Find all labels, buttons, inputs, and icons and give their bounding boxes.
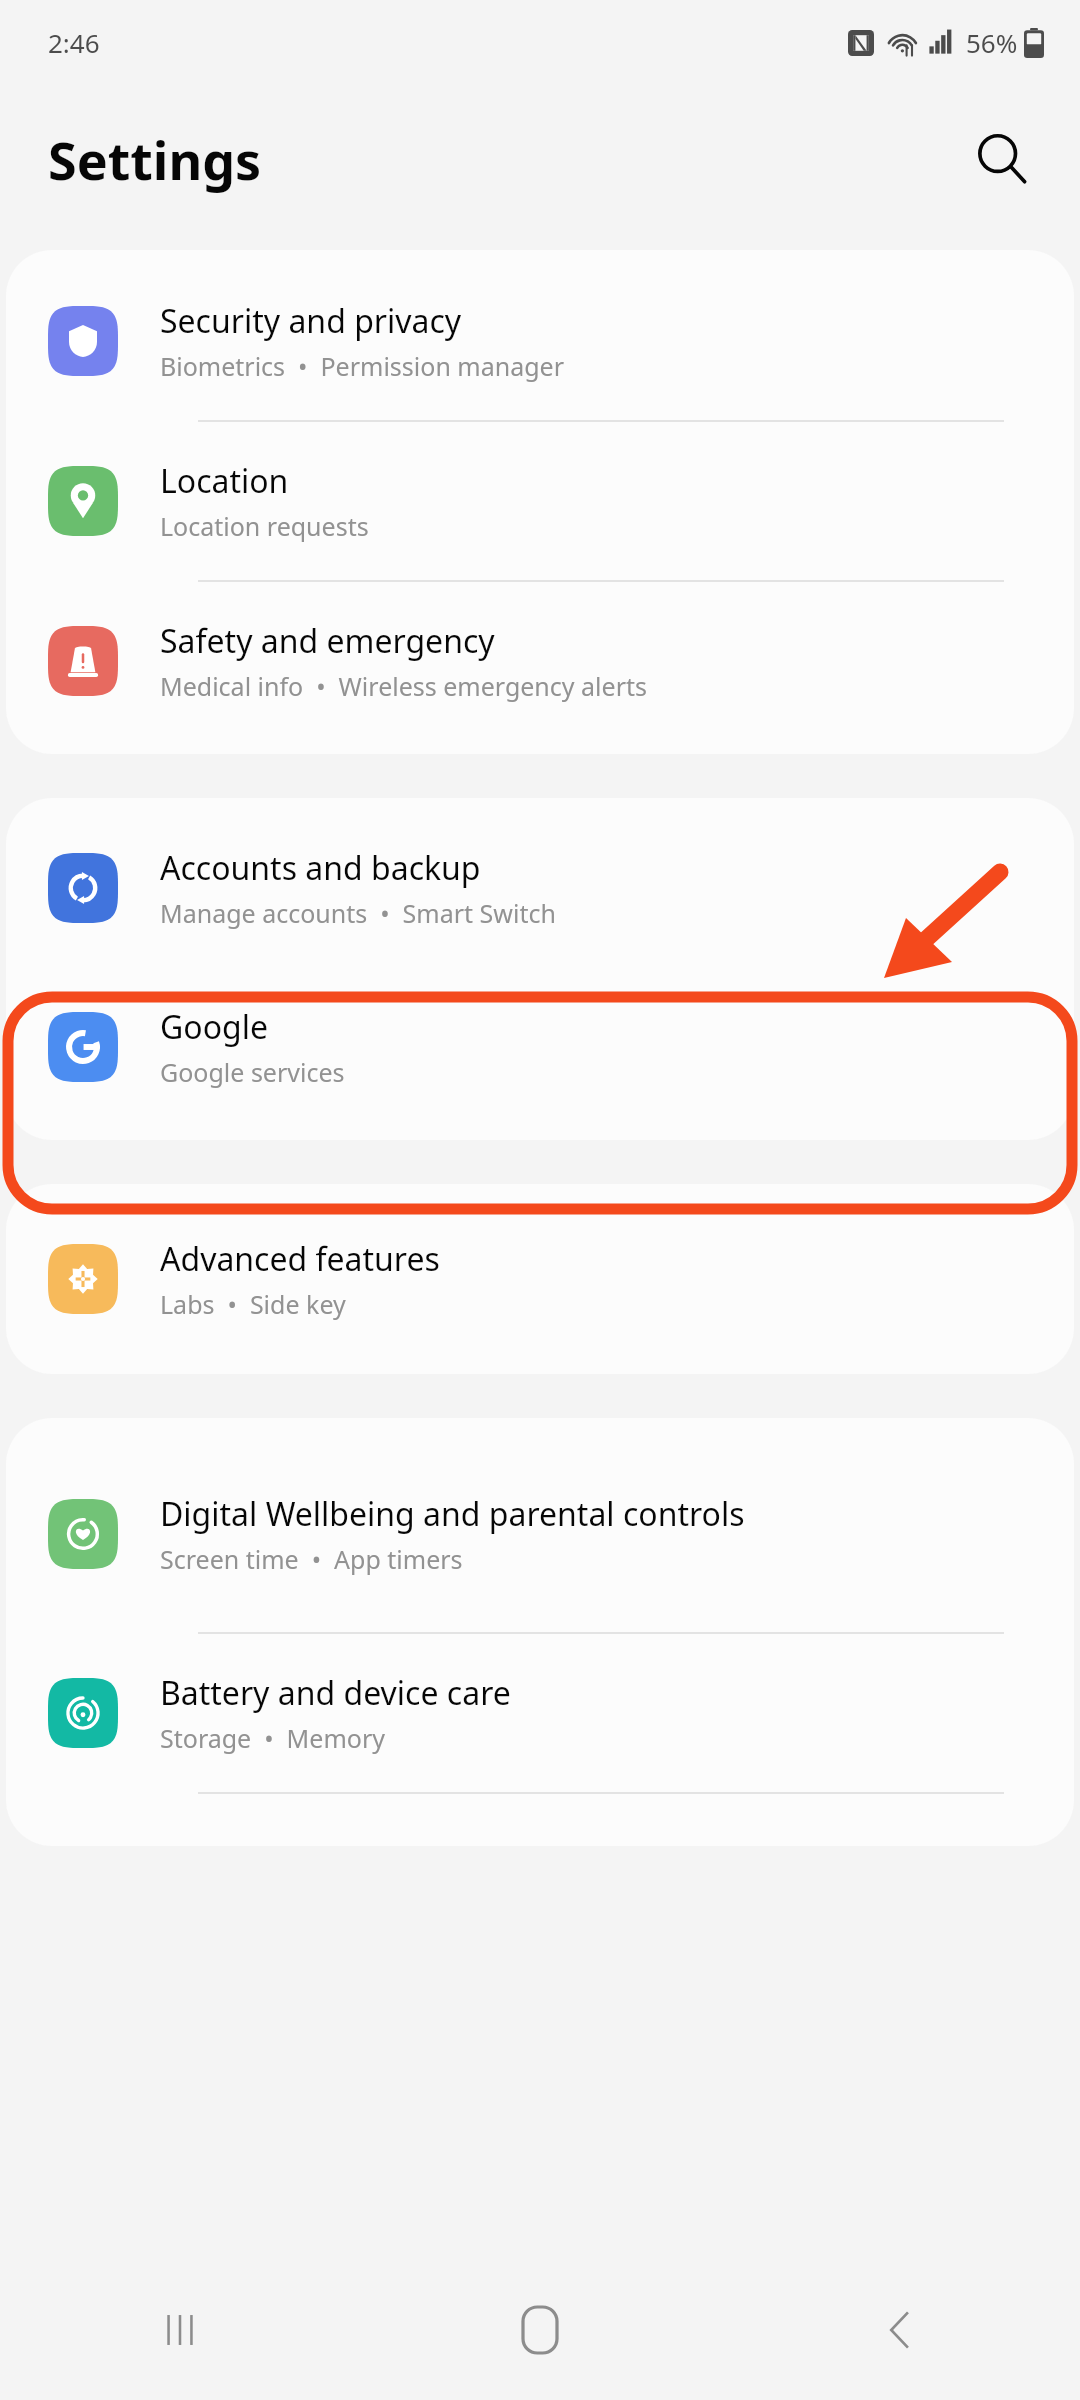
staticText: Security and privacy [160, 299, 462, 343]
staticText: Digital Wellbeing and parental controls [160, 1492, 745, 1536]
staticText: Medical info • Wireless emergency alerts [160, 669, 647, 703]
staticText: 56% [966, 25, 1018, 60]
button[interactable]: Back [720, 2260, 1080, 2400]
staticText: Manage accounts • Smart Switch [160, 896, 556, 930]
staticText: Labs • Side key [160, 1287, 346, 1321]
staticText: Accounts and backup [160, 846, 481, 890]
staticText: Screen time • App timers [160, 1542, 463, 1576]
button[interactable]: Advanced features [6, 1200, 1074, 1358]
staticText: Google services [160, 1055, 345, 1089]
button[interactable]: Battery and device care [6, 1634, 1074, 1792]
staticText: Storage • Memory [160, 1721, 385, 1755]
staticText: Biometrics • Permission manager [160, 349, 565, 383]
button[interactable]: Digital Wellbeing and parental controls [6, 1436, 1074, 1632]
staticText: 2:46 [48, 25, 100, 60]
staticText: Settings [48, 124, 262, 195]
button[interactable]: Security and privacy [6, 262, 1074, 420]
button[interactable]: Google [6, 968, 1074, 1126]
staticText: Battery and device care [160, 1671, 511, 1715]
staticText: Advanced features [160, 1237, 440, 1281]
button[interactable]: Accounts and backup [6, 808, 1074, 968]
button[interactable]: Recent apps [0, 2260, 360, 2400]
staticText: Google [160, 1005, 269, 1049]
staticText: Location requests [160, 509, 369, 543]
button[interactable]: Location [6, 422, 1074, 580]
button[interactable]: Home [360, 2260, 720, 2400]
button[interactable]: Safety and emergency [6, 582, 1074, 740]
button[interactable]: Search [966, 123, 1038, 195]
staticText: Safety and emergency [160, 619, 495, 663]
staticText: Location [160, 459, 289, 503]
